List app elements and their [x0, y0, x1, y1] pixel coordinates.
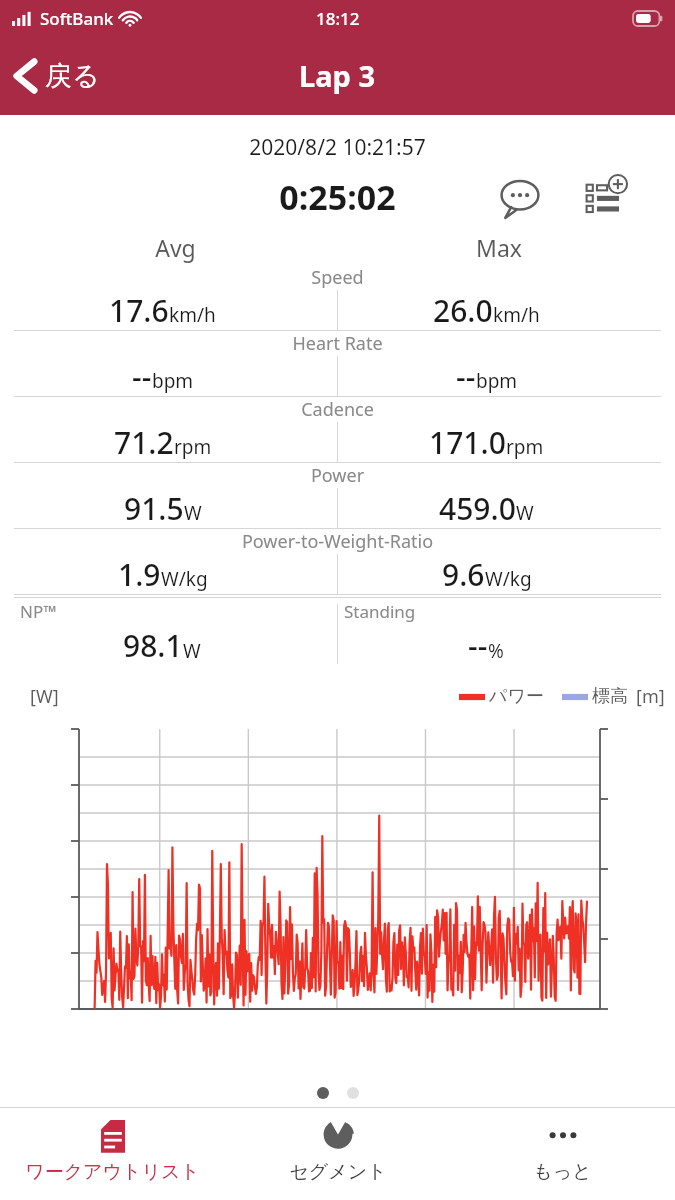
staticText: SoftBank: [40, 7, 114, 30]
staticText: もっと: [533, 1160, 592, 1184]
staticText: Lap 3: [299, 56, 376, 95]
staticText: 9.6: [442, 554, 485, 594]
staticText: W/kg: [485, 566, 532, 592]
staticText: W: [183, 638, 201, 664]
staticText: 戻る: [45, 59, 100, 93]
staticText: Speed: [14, 265, 661, 290]
button[interactable]: 戻る: [0, 50, 116, 102]
staticText: Power: [14, 463, 661, 488]
staticText: bpm: [152, 368, 194, 394]
staticText: 171.0: [429, 422, 506, 462]
staticText: 1.9: [118, 554, 161, 594]
staticText: ワークアウトリスト: [25, 1160, 200, 1184]
staticText: 98.1: [123, 625, 183, 666]
staticText: %: [488, 638, 504, 664]
staticText: [m]: [636, 684, 665, 709]
staticText: W: [184, 500, 202, 526]
staticText: bpm: [476, 368, 518, 394]
staticText: 91.5: [124, 488, 184, 528]
staticText: km/h: [169, 302, 216, 328]
staticText: Max: [337, 232, 661, 263]
staticText: --: [456, 356, 476, 396]
staticText: パワー: [489, 685, 544, 708]
staticText: 標高: [592, 685, 628, 708]
staticText: 0:25:02: [279, 174, 396, 220]
button[interactable]: セグメント: [225, 1108, 450, 1200]
staticText: km/h: [493, 302, 540, 328]
staticText: Cadence: [14, 397, 661, 422]
staticText: --: [132, 356, 152, 396]
button[interactable]: Comments: [497, 174, 543, 220]
staticText: W/kg: [161, 566, 208, 592]
staticText: セグメント: [289, 1160, 387, 1184]
staticText: NP™: [20, 600, 57, 623]
button[interactable]: ワークアウトリスト: [0, 1108, 225, 1200]
button[interactable]: Add to list: [582, 174, 628, 220]
staticText: [W]: [30, 684, 59, 709]
staticText: Power-to-Weight-Ratio: [14, 529, 661, 554]
button[interactable]: もっと: [450, 1108, 675, 1200]
staticText: W: [516, 500, 534, 526]
staticText: 2020/8/2 10:21:57: [0, 133, 675, 162]
staticText: Avg: [14, 232, 337, 263]
staticText: --: [468, 625, 488, 666]
staticText: Heart Rate: [14, 331, 661, 356]
staticText: 459.0: [439, 488, 516, 528]
staticText: rpm: [506, 434, 544, 460]
staticText: 17.6: [109, 290, 169, 330]
staticText: 18:12: [316, 7, 360, 30]
staticText: 26.0: [433, 290, 493, 330]
staticText: Standing: [344, 600, 416, 623]
staticText: 71.2: [114, 422, 174, 462]
staticText: rpm: [174, 434, 212, 460]
